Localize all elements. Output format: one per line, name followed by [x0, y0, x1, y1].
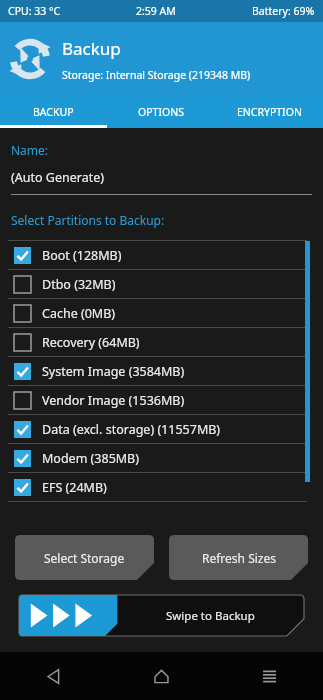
staticText: Name:	[11, 142, 49, 158]
staticText: Backup	[62, 37, 121, 60]
button[interactable]: Cache (0MB)	[0, 299, 323, 327]
staticText: Boot (128MB)	[42, 247, 122, 264]
button[interactable]: Home	[107, 652, 215, 700]
button[interactable]: Dtbo (32MB)	[0, 270, 323, 298]
button[interactable]: Back	[0, 652, 107, 700]
button[interactable]: Menu	[215, 652, 323, 700]
button[interactable]: Recovery (64MB)	[0, 328, 323, 356]
button[interactable]: Data (excl. storage) (11557MB)	[0, 415, 323, 443]
button[interactable]: BACKUP	[0, 96, 107, 128]
button[interactable]: Modem (385MB)	[0, 444, 323, 472]
staticText: CPU: 33 °C	[8, 4, 61, 18]
staticText: Swipe to Backup	[166, 608, 255, 624]
button[interactable]: Boot (128MB)	[0, 241, 323, 269]
staticText: System Image (3584MB)	[42, 363, 185, 380]
button[interactable]: System Image (3584MB)	[0, 357, 323, 385]
button[interactable]: ENCRYPTION	[215, 96, 323, 128]
button[interactable]: Select Storage	[15, 535, 154, 580]
staticText: Select Storage	[44, 550, 125, 566]
staticText: Cache (0MB)	[42, 305, 116, 322]
staticText: EFS (24MB)	[42, 479, 107, 496]
staticText: Dtbo (32MB)	[42, 276, 116, 293]
staticText: Storage: Internal Storage (219348 MB)	[62, 68, 251, 82]
staticText: 2:59 AM	[136, 4, 176, 18]
staticText: BACKUP	[33, 105, 74, 119]
button[interactable]: EFS (24MB)	[0, 473, 323, 501]
staticText: OPTIONS	[138, 105, 184, 119]
staticText: Modem (385MB)	[42, 450, 139, 467]
staticText: Battery: 69%	[252, 4, 315, 18]
staticText: Recovery (64MB)	[42, 334, 140, 351]
staticText: ENCRYPTION	[237, 105, 302, 119]
staticText: Select Partitions to Backup:	[11, 212, 165, 228]
staticText: (Auto Generate)	[11, 169, 104, 186]
staticText: Refresh Sizes	[202, 550, 276, 566]
staticText: Data (excl. storage) (11557MB)	[42, 421, 221, 438]
button[interactable]: Swipe to Backup	[19, 595, 304, 636]
button[interactable]: OPTIONS	[107, 96, 215, 128]
button[interactable]: Vendor Image (1536MB)	[0, 386, 323, 414]
button[interactable]: Refresh Sizes	[169, 535, 308, 580]
staticText: Vendor Image (1536MB)	[42, 392, 185, 409]
